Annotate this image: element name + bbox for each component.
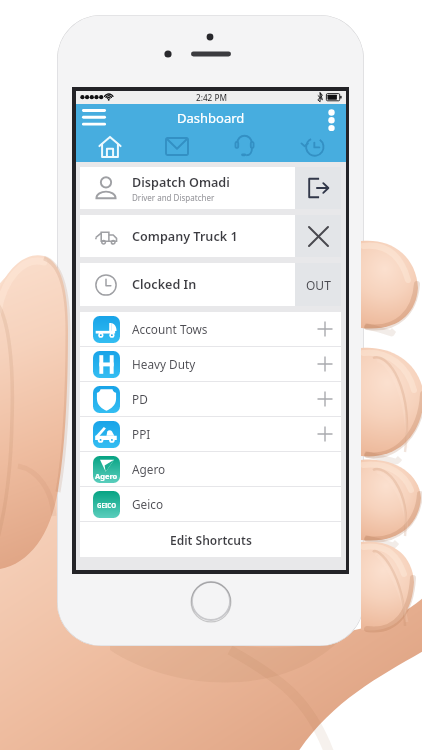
button[interactable]: More options: [320, 104, 342, 131]
button[interactable]: Home: [76, 131, 143, 162]
staticText: Company Truck 1: [132, 228, 238, 245]
button[interactable]: Remove truck: [295, 215, 341, 257]
button[interactable]: Edit Shortcuts: [80, 522, 341, 557]
staticText: Edit Shortcuts: [170, 532, 252, 548]
button[interactable]: Messages: [143, 131, 210, 162]
button[interactable]: GEICO: [80, 487, 341, 522]
staticText: Geico: [132, 496, 311, 512]
staticText: Dashboard: [177, 109, 245, 127]
button[interactable]: Heavy Duty: [80, 347, 341, 382]
button[interactable]: OUT: [295, 263, 341, 306]
staticText: GEICO: [97, 501, 117, 509]
button[interactable]: Log out: [295, 167, 341, 209]
button[interactable]: Clocked In: [80, 263, 295, 306]
button[interactable]: Dispatch Omadi: [80, 167, 295, 209]
button[interactable]: PD: [80, 382, 341, 417]
staticText: PD: [132, 391, 311, 407]
button[interactable]: Agero: [80, 452, 341, 487]
staticText: Dispatch Omadi: [132, 174, 230, 191]
staticText: Agero: [132, 461, 311, 477]
staticText: Clocked In: [132, 276, 197, 293]
button[interactable]: Support: [210, 131, 278, 162]
staticText: OUT: [306, 277, 331, 293]
button[interactable]: Company Truck 1: [80, 215, 295, 257]
staticText: 2:42 PM: [196, 92, 227, 103]
button[interactable]: Open navigation menu: [79, 104, 109, 131]
button[interactable]: PPI: [80, 417, 341, 452]
staticText: Account Tows: [132, 321, 311, 337]
staticText: Heavy Duty: [132, 356, 311, 372]
button[interactable]: History: [278, 131, 346, 162]
staticText: Agero: [95, 471, 118, 481]
button[interactable]: Account Tows: [80, 312, 341, 347]
staticText: PPI: [132, 426, 311, 442]
staticText: Driver and Dispatcher: [132, 192, 215, 203]
